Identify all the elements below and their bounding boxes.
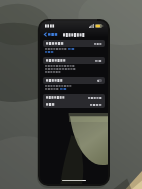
other: Toggle [97, 79, 102, 82]
button[interactable]: Back to Settings [43, 31, 59, 38]
button[interactable] [43, 40, 105, 47]
button[interactable] [43, 57, 105, 64]
button[interactable] [43, 94, 105, 101]
button[interactable]: Toggle [43, 77, 105, 84]
button[interactable] [43, 101, 105, 108]
